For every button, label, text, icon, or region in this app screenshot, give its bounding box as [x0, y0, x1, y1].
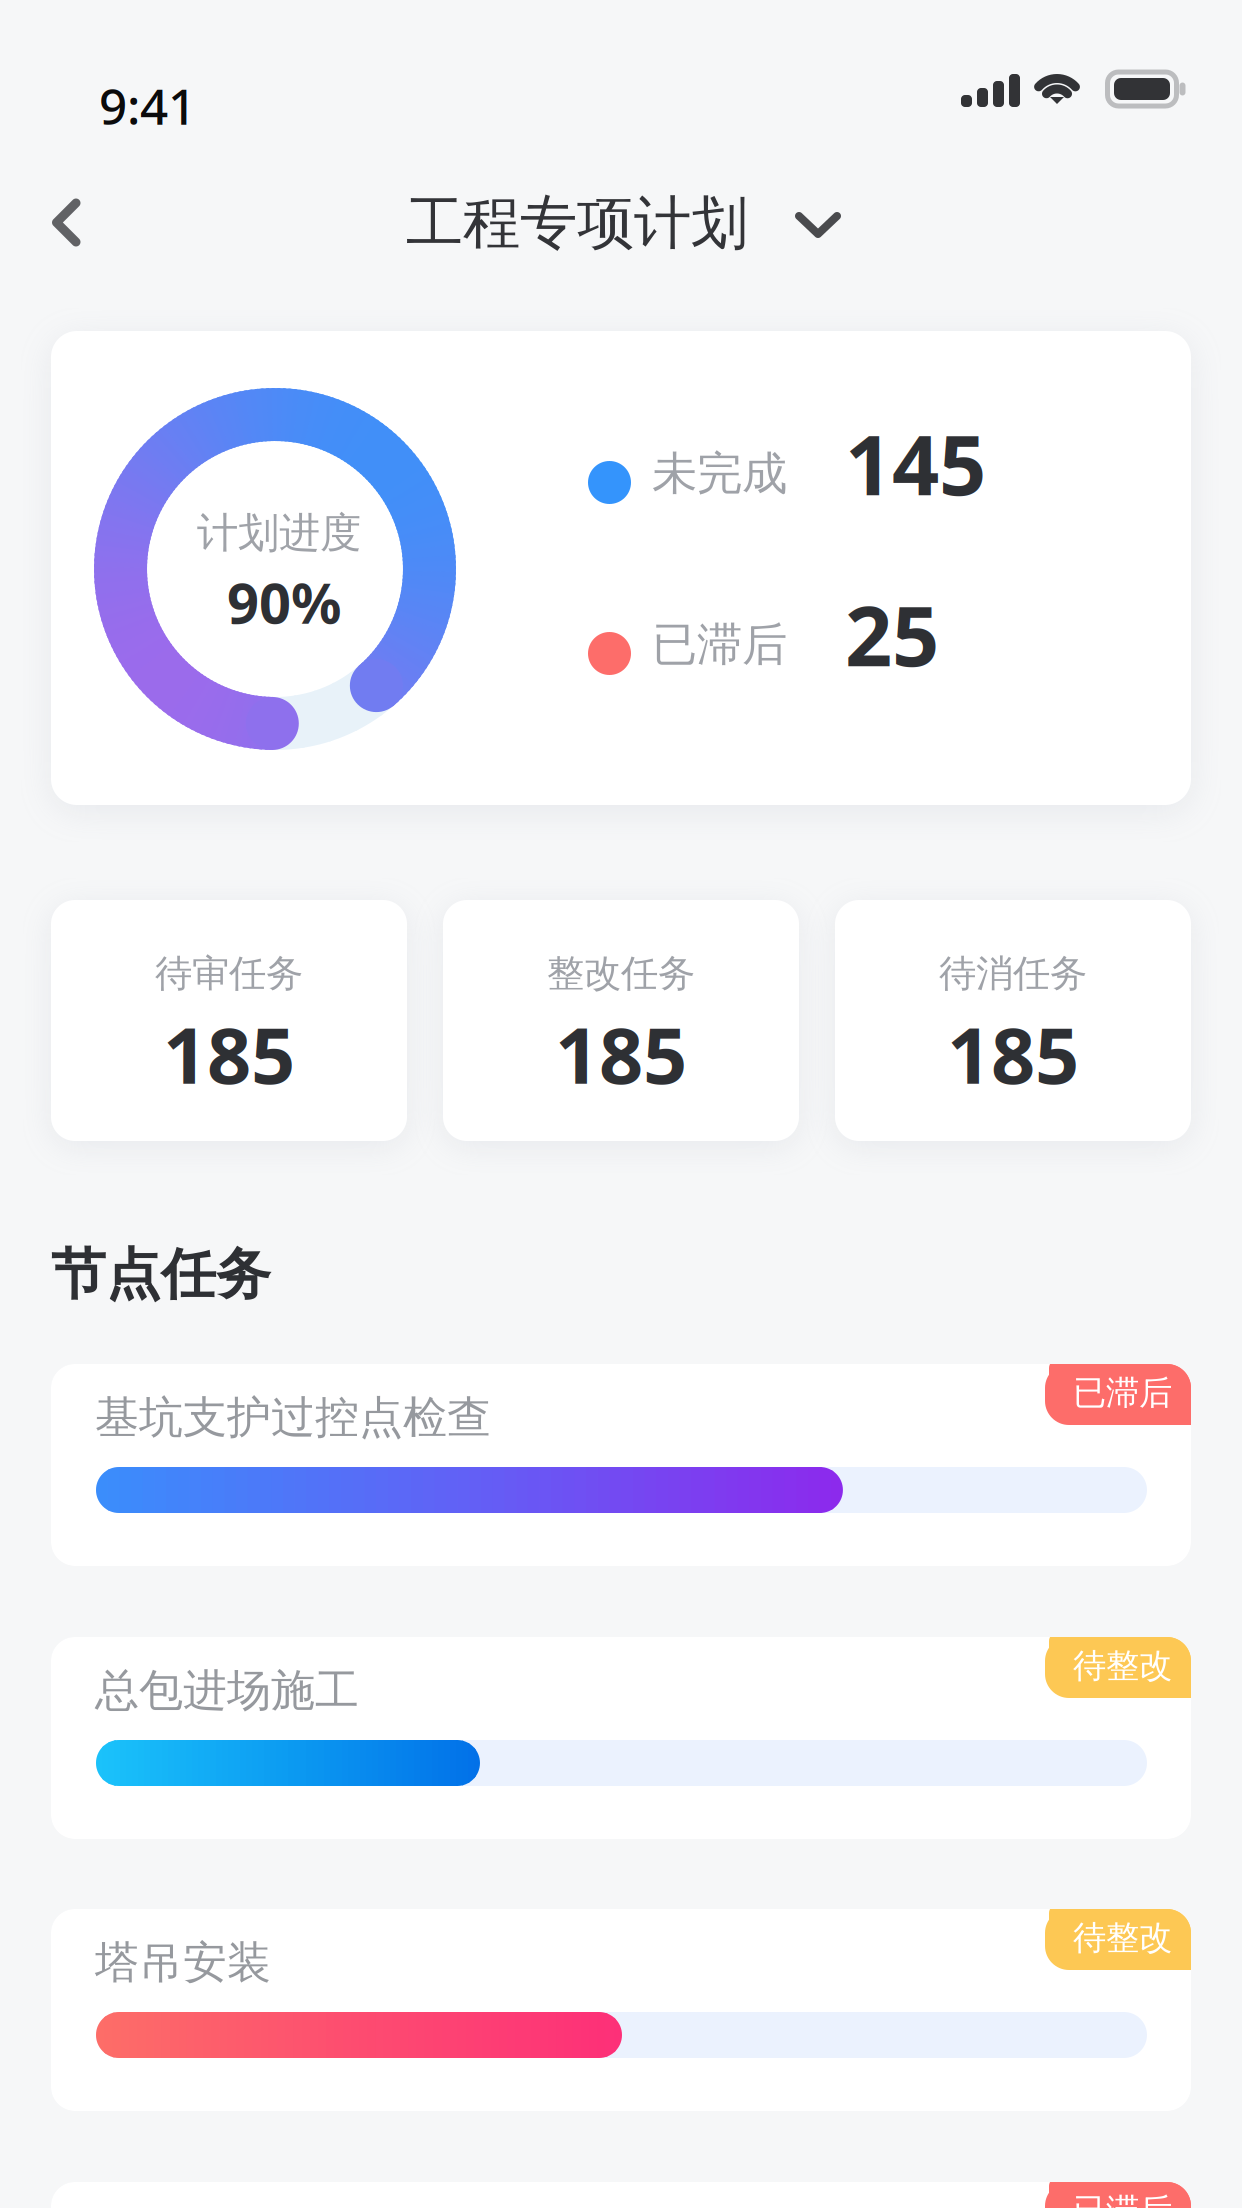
- staticText: 145: [845, 407, 986, 520]
- button[interactable]: Back: [0, 176, 104, 300]
- staticText: 工程专项计划: [406, 187, 748, 259]
- staticText: 节点任务: [51, 1240, 271, 1309]
- staticText: 计划进度: [197, 507, 361, 559]
- staticText: 待整改: [1073, 1645, 1172, 1687]
- staticText: 25: [845, 578, 939, 691]
- staticText: 185: [947, 1001, 1079, 1106]
- staticText: 待消任务: [939, 950, 1087, 997]
- staticText: 已滞后: [1073, 1372, 1172, 1414]
- button[interactable]: 整改任务: [443, 900, 799, 1141]
- button[interactable]: 总包进场施工: [51, 1637, 1191, 1839]
- button[interactable]: 待消任务: [835, 900, 1191, 1141]
- staticText: 185: [555, 1001, 687, 1106]
- staticText: 未完成: [652, 445, 787, 502]
- button[interactable]: 待审任务: [51, 900, 407, 1141]
- staticText: 待整改: [1073, 1917, 1172, 1959]
- button[interactable]: 地基验收: [51, 2182, 1191, 2208]
- staticText: 已滞后: [652, 616, 787, 673]
- staticText: 9:41: [99, 72, 196, 139]
- staticText: 塔吊安装: [95, 1935, 271, 1990]
- staticText: 整改任务: [547, 950, 695, 997]
- staticText: 基坑支护过控点检查: [95, 1390, 491, 1445]
- button[interactable]: 工程专项计划: [406, 176, 866, 300]
- staticText: 待审任务: [155, 950, 303, 997]
- button[interactable]: 塔吊安装: [51, 1909, 1191, 2111]
- staticText: 已滞后: [1073, 2190, 1172, 2208]
- staticText: 185: [163, 1001, 295, 1106]
- staticText: 总包进场施工: [95, 1663, 359, 1718]
- button[interactable]: 基坑支护过控点检查: [51, 1364, 1191, 1566]
- staticText: 90%: [227, 564, 342, 640]
